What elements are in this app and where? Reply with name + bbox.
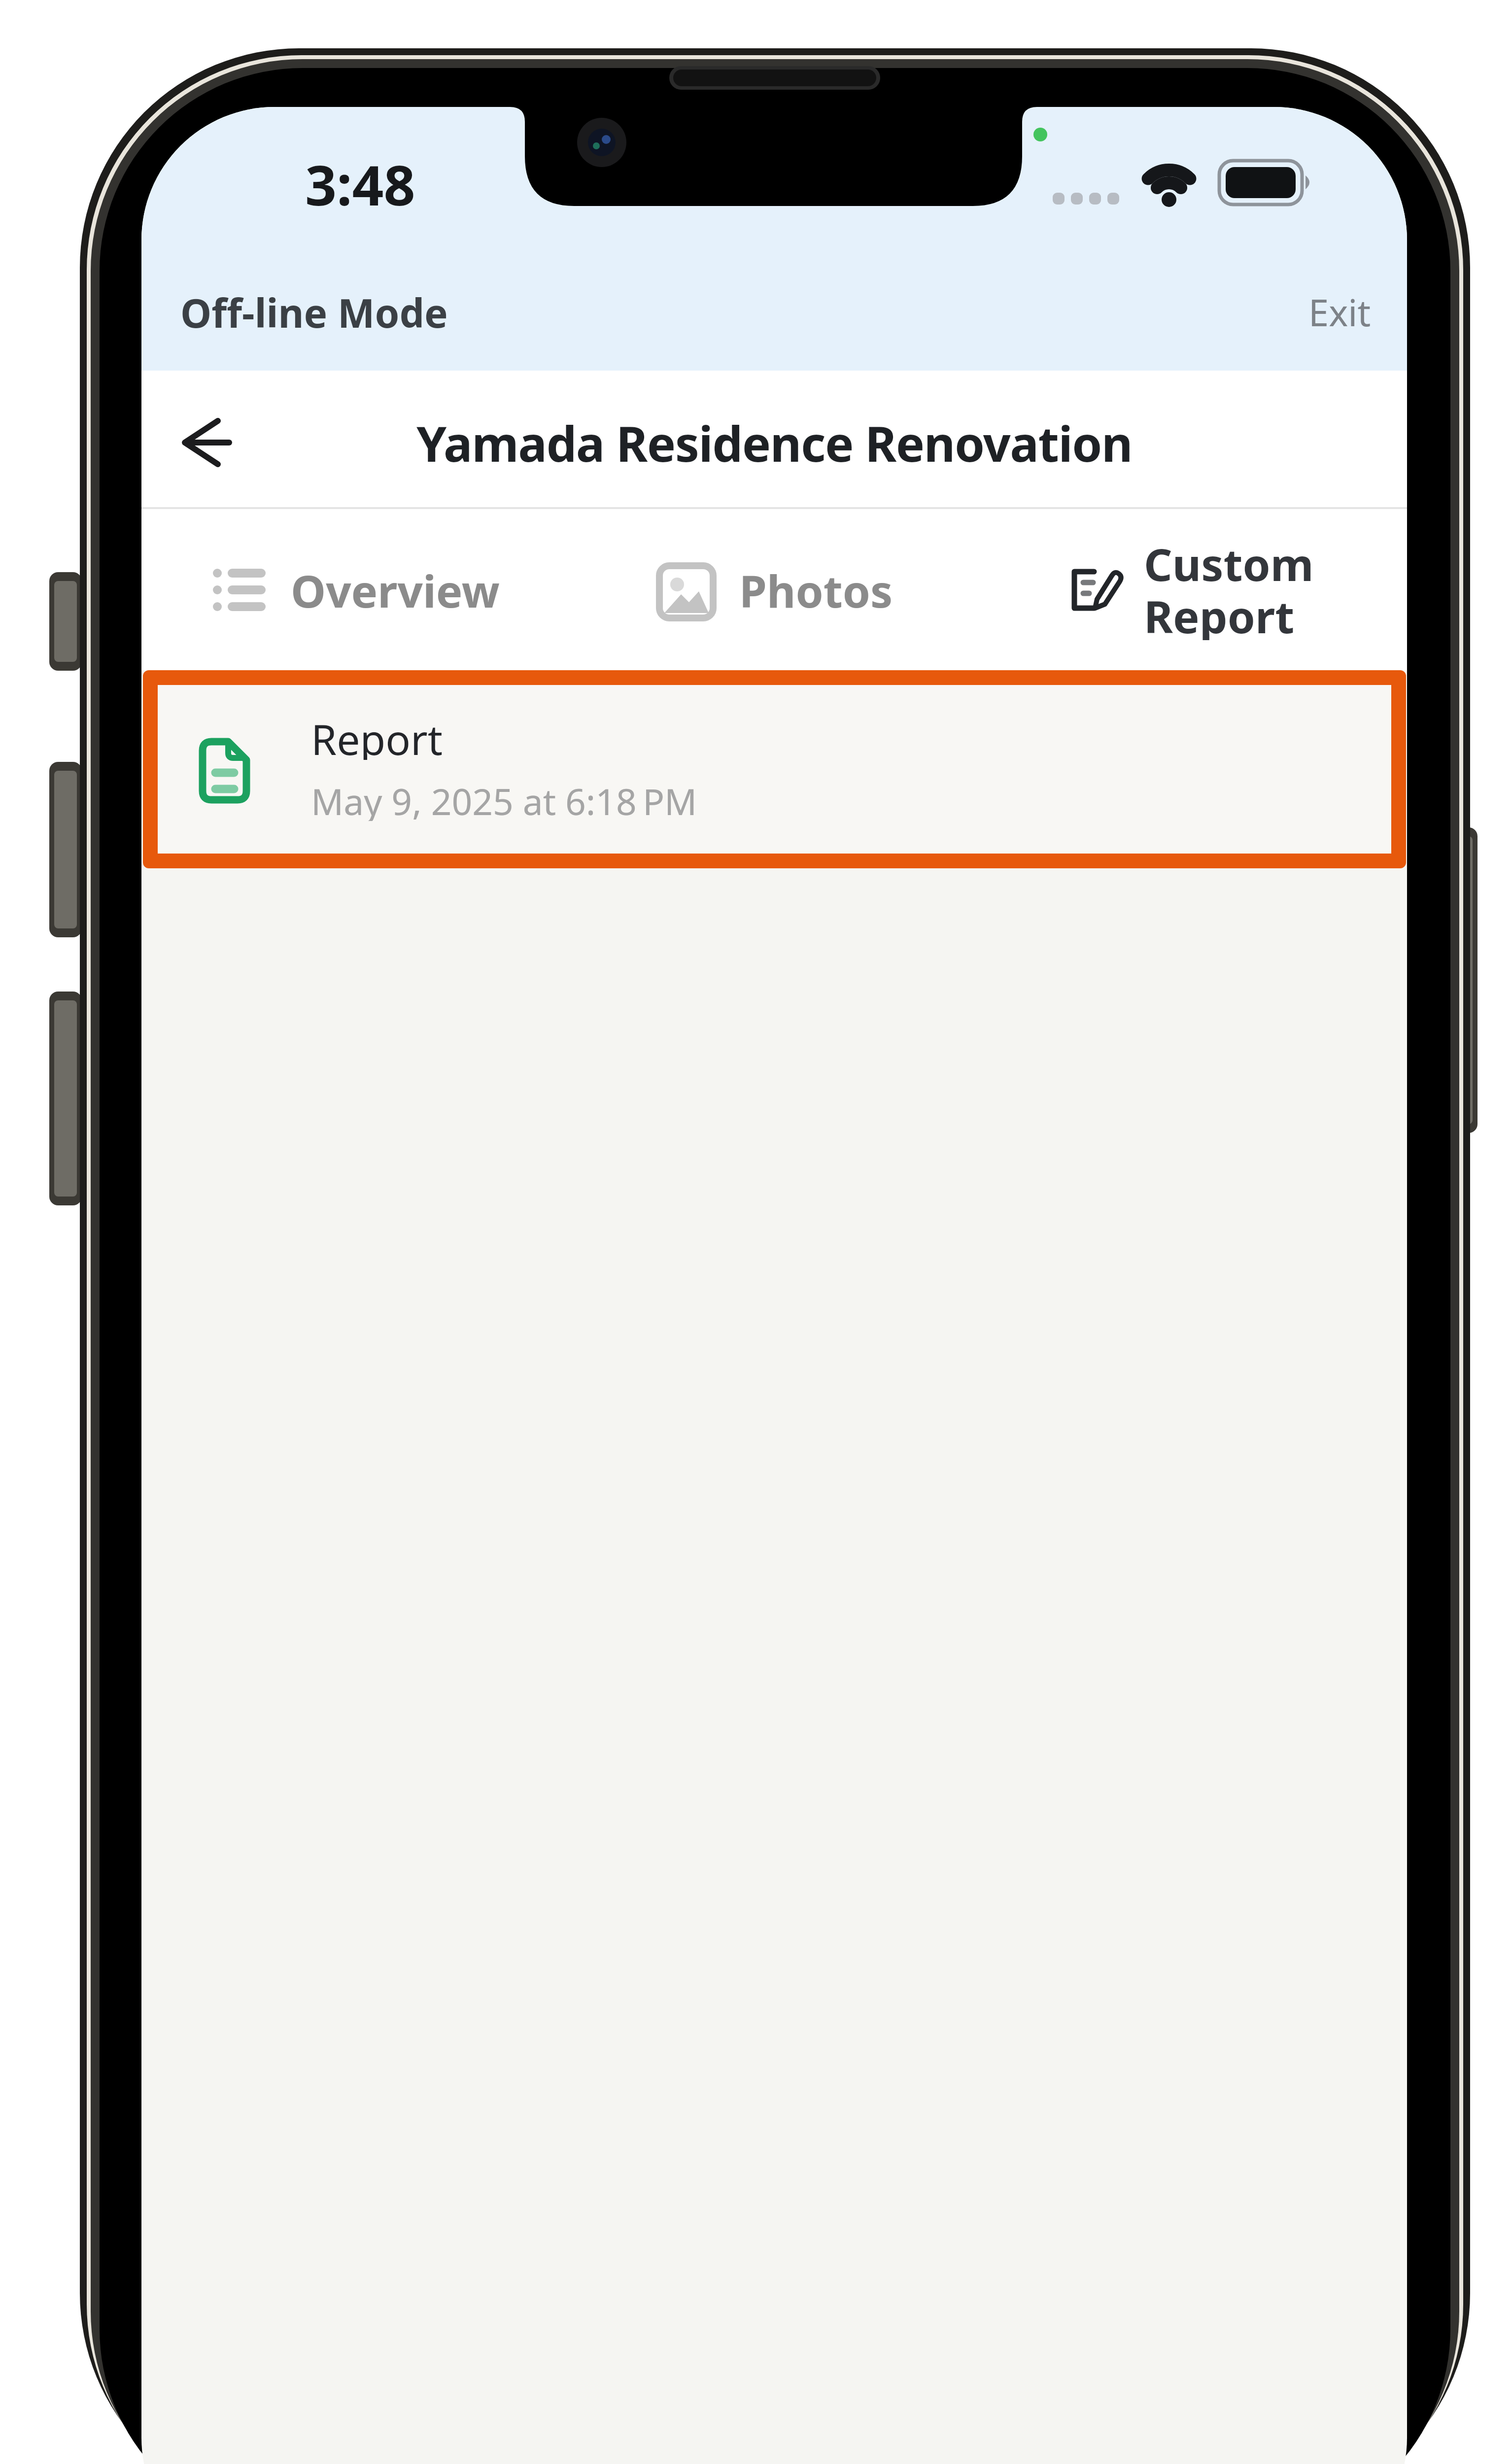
staticText: Custom bbox=[1144, 534, 1314, 588]
staticText: Off-line Mode bbox=[180, 285, 448, 339]
button[interactable]: Photos bbox=[649, 550, 915, 629]
staticText: Photos bbox=[739, 560, 893, 619]
button[interactable]: Exit bbox=[1258, 282, 1371, 342]
button[interactable] bbox=[161, 408, 250, 479]
staticText: Exit bbox=[1308, 287, 1371, 337]
staticText: 3:48 bbox=[305, 146, 415, 210]
button[interactable]: Report bbox=[143, 670, 1406, 868]
staticText: May 9, 2025 at 6:18 PM bbox=[311, 777, 697, 821]
staticText: Overview bbox=[291, 560, 500, 619]
staticText: Report bbox=[311, 711, 443, 760]
staticText: Yamada Residence Renovation bbox=[416, 410, 1133, 472]
button[interactable]: Custom bbox=[1058, 528, 1364, 651]
staticText: Report bbox=[1144, 586, 1295, 640]
button[interactable]: Overview bbox=[201, 550, 506, 629]
